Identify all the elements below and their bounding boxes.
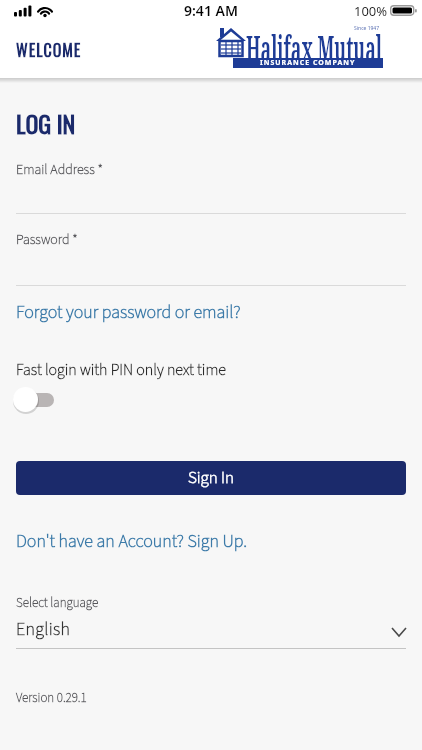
button[interactable] <box>16 253 406 286</box>
staticText: Forgot your password or email? <box>16 300 241 326</box>
button[interactable] <box>12 386 60 414</box>
staticText: English <box>16 617 71 643</box>
staticText: 9:41 AM <box>184 1 238 20</box>
staticText: LOG IN <box>16 105 76 141</box>
staticText: WELCOME <box>16 38 82 62</box>
staticText: Since 1947 <box>354 25 380 32</box>
staticText: Halifax Mutual <box>246 23 382 72</box>
staticText: Select language <box>16 594 99 613</box>
button[interactable]: English <box>16 614 406 649</box>
button[interactable] <box>16 181 406 214</box>
staticText: Email Address * <box>16 160 103 180</box>
staticText: Fast login with PIN only next time <box>16 359 226 382</box>
staticText: Sign In <box>188 466 234 490</box>
button[interactable]: Don't have an Account? Sign Up. <box>16 529 248 555</box>
staticText: 100% <box>354 2 388 20</box>
staticText: Password * <box>16 230 78 250</box>
button[interactable]: Sign In <box>16 461 406 495</box>
staticText: INSURANCE COMPANY <box>260 58 356 68</box>
staticText: Version 0.29.1 <box>16 689 87 708</box>
staticText: Don't have an Account? Sign Up. <box>16 529 248 555</box>
button[interactable]: Forgot your password or email? <box>16 300 241 326</box>
